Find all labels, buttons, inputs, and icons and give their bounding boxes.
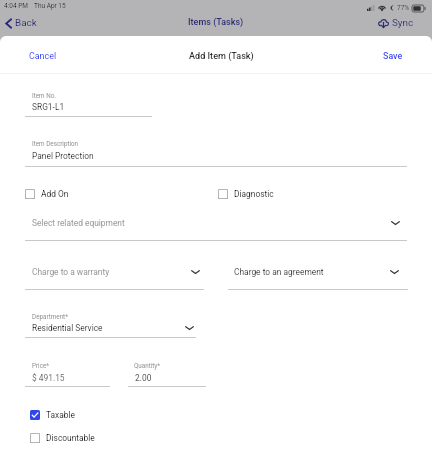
staticText: Taxable — [46, 410, 76, 420]
staticText: $ 491.15 — [32, 373, 65, 383]
staticText: 4:04 PM — [4, 2, 28, 10]
staticText: Select related equipment — [32, 218, 125, 228]
button[interactable]: Charge to a warranty — [32, 267, 200, 277]
staticText: Back — [15, 17, 37, 29]
staticText: Discountable — [46, 433, 95, 443]
staticText: Residential Service — [32, 323, 103, 333]
staticText: 2.00 — [135, 373, 152, 383]
staticText: SRG1-L1 — [32, 102, 65, 112]
button[interactable]: Back — [0, 14, 43, 32]
button[interactable]: 2.00 — [128, 373, 206, 391]
staticText: Diagnostic — [234, 189, 274, 199]
button[interactable]: Residential Service — [32, 323, 194, 333]
staticText: 77% — [397, 4, 410, 12]
button[interactable]: SRG1-L1 — [25, 102, 152, 120]
staticText: Add On — [41, 189, 69, 199]
button[interactable]: Select related equipment — [32, 218, 400, 228]
staticText: Item Description — [32, 140, 79, 147]
button[interactable]: Panel Protection — [25, 151, 407, 169]
staticText: Thu Apr 15 — [34, 2, 66, 10]
button[interactable]: Save — [375, 47, 432, 65]
staticText: Items (Tasks) — [188, 17, 244, 28]
button[interactable]: Add On — [25, 188, 69, 200]
button[interactable]: Sync — [372, 14, 432, 32]
staticText: Panel Protection — [32, 151, 94, 161]
staticText: Charge to a warranty — [32, 267, 110, 277]
button[interactable]: Cancel — [0, 47, 65, 65]
button[interactable]: Charge to an agreement — [234, 267, 399, 277]
staticText: Item No. — [32, 92, 56, 99]
staticText: Department* — [32, 313, 68, 320]
staticText: Quantity* — [134, 362, 161, 369]
button[interactable]: $ 491.15 — [25, 373, 110, 391]
staticText: Charge to an agreement — [234, 267, 324, 277]
button[interactable]: Diagnostic — [218, 188, 274, 200]
button[interactable]: Taxable — [30, 409, 76, 421]
staticText: Add Item (Task) — [189, 51, 254, 62]
button[interactable]: Discountable — [30, 432, 95, 444]
staticText: Price* — [32, 362, 49, 369]
staticText: Sync — [392, 17, 414, 29]
